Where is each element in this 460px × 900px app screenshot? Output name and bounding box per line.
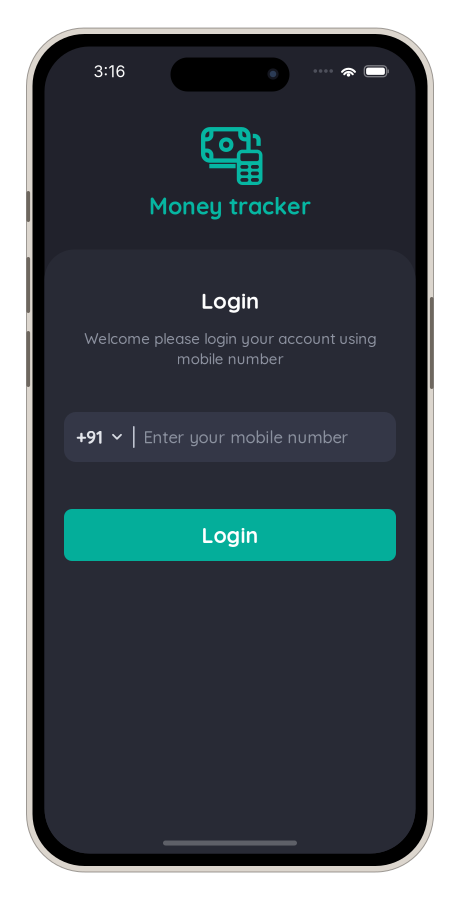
button[interactable]: +91 — [64, 412, 396, 462]
staticText: Login — [201, 286, 259, 314]
staticText: Money tracker — [149, 191, 311, 220]
staticText: 3:16 — [93, 62, 125, 81]
staticText: +91 — [76, 426, 103, 448]
button[interactable]: Login — [64, 509, 396, 561]
staticText: Login — [201, 522, 258, 548]
staticText: Welcome please login your account using … — [84, 329, 376, 368]
staticText: Enter your mobile number — [144, 427, 349, 447]
